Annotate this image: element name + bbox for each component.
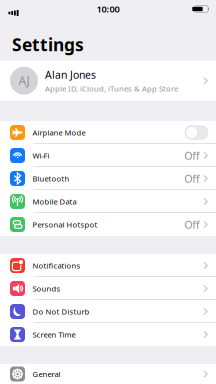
staticText: Wi-Fi xyxy=(32,150,49,161)
button[interactable]: AJ xyxy=(0,61,216,101)
staticText: Alan Jones xyxy=(45,68,96,82)
button[interactable]: Wi-Fi xyxy=(0,144,216,167)
staticText: Do Not Disturb xyxy=(32,306,89,317)
button[interactable]: Bluetooth xyxy=(0,167,216,190)
staticText: Mobile Data xyxy=(32,196,76,207)
button[interactable]: Personal Hotspot xyxy=(0,213,216,236)
button[interactable]: Sounds xyxy=(0,277,216,300)
staticText: Settings xyxy=(12,33,84,56)
button[interactable]: Screen Time xyxy=(0,323,216,346)
staticText: General xyxy=(32,369,60,379)
button[interactable]: Do Not Disturb xyxy=(0,300,216,323)
staticText: Personal Hotspot xyxy=(32,219,97,230)
staticText: Notifications xyxy=(32,260,80,271)
staticText: Bluetooth xyxy=(32,173,69,184)
staticText: Airplane Mode xyxy=(32,127,85,138)
staticText: 10:00 xyxy=(96,3,119,15)
staticText: Off xyxy=(184,148,199,163)
button[interactable]: General xyxy=(0,362,216,384)
staticText: Off xyxy=(184,171,199,186)
button[interactable]: Notifications xyxy=(0,254,216,277)
button[interactable]: Mobile Data xyxy=(0,190,216,213)
staticText: Screen Time xyxy=(32,329,75,340)
staticText: Sounds xyxy=(32,283,60,294)
staticText: Apple ID, iCloud, iTunes & App Store xyxy=(45,83,178,94)
staticText: AJ xyxy=(18,73,29,89)
staticText: Off xyxy=(184,217,199,232)
button[interactable]: Airplane Mode xyxy=(0,121,216,144)
